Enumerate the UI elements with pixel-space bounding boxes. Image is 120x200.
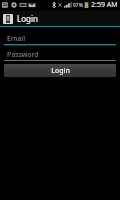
- button[interactable]: Password: [4, 49, 116, 61]
- button[interactable]: Email: [4, 33, 116, 46]
- button[interactable]: Login: [4, 64, 116, 77]
- staticText: 2:59 AM: [91, 0, 118, 10]
- staticText: Password: [7, 50, 39, 60]
- staticText: Login: [51, 66, 70, 76]
- other: App icon: [3, 14, 13, 24]
- button[interactable]: App icon: [0, 11, 120, 26]
- staticText: Email: [7, 34, 25, 44]
- staticText: 97%: [73, 2, 83, 9]
- staticText: Login: [17, 13, 38, 24]
